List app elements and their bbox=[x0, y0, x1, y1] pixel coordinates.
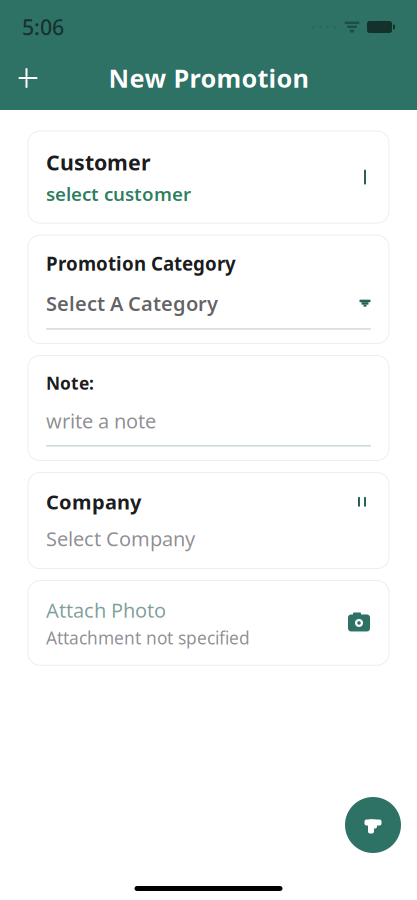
button[interactable]: Company bbox=[28, 472, 389, 569]
button[interactable]: Customer bbox=[28, 131, 389, 223]
staticText: write a note bbox=[46, 407, 156, 434]
button[interactable]: write a note bbox=[46, 407, 371, 447]
staticText: Company bbox=[46, 488, 141, 515]
staticText: Promotion Category bbox=[46, 251, 236, 276]
staticText: Note: bbox=[46, 371, 94, 394]
staticText: New Promotion bbox=[108, 61, 308, 95]
staticText: Attachment not specified bbox=[46, 626, 250, 649]
staticText: Attach Photo bbox=[46, 597, 166, 623]
button[interactable]: Select A Category bbox=[46, 290, 371, 329]
staticText: Select Company bbox=[46, 525, 195, 552]
button[interactable]: Attach Photo bbox=[28, 581, 389, 665]
staticText: select customer bbox=[46, 181, 191, 206]
button[interactable]: Submit promotion bbox=[345, 797, 401, 853]
staticText: Customer bbox=[46, 148, 151, 176]
button[interactable]: Back bbox=[6, 56, 50, 100]
staticText: 5:06 bbox=[22, 13, 64, 41]
staticText: Select A Category bbox=[46, 290, 218, 316]
